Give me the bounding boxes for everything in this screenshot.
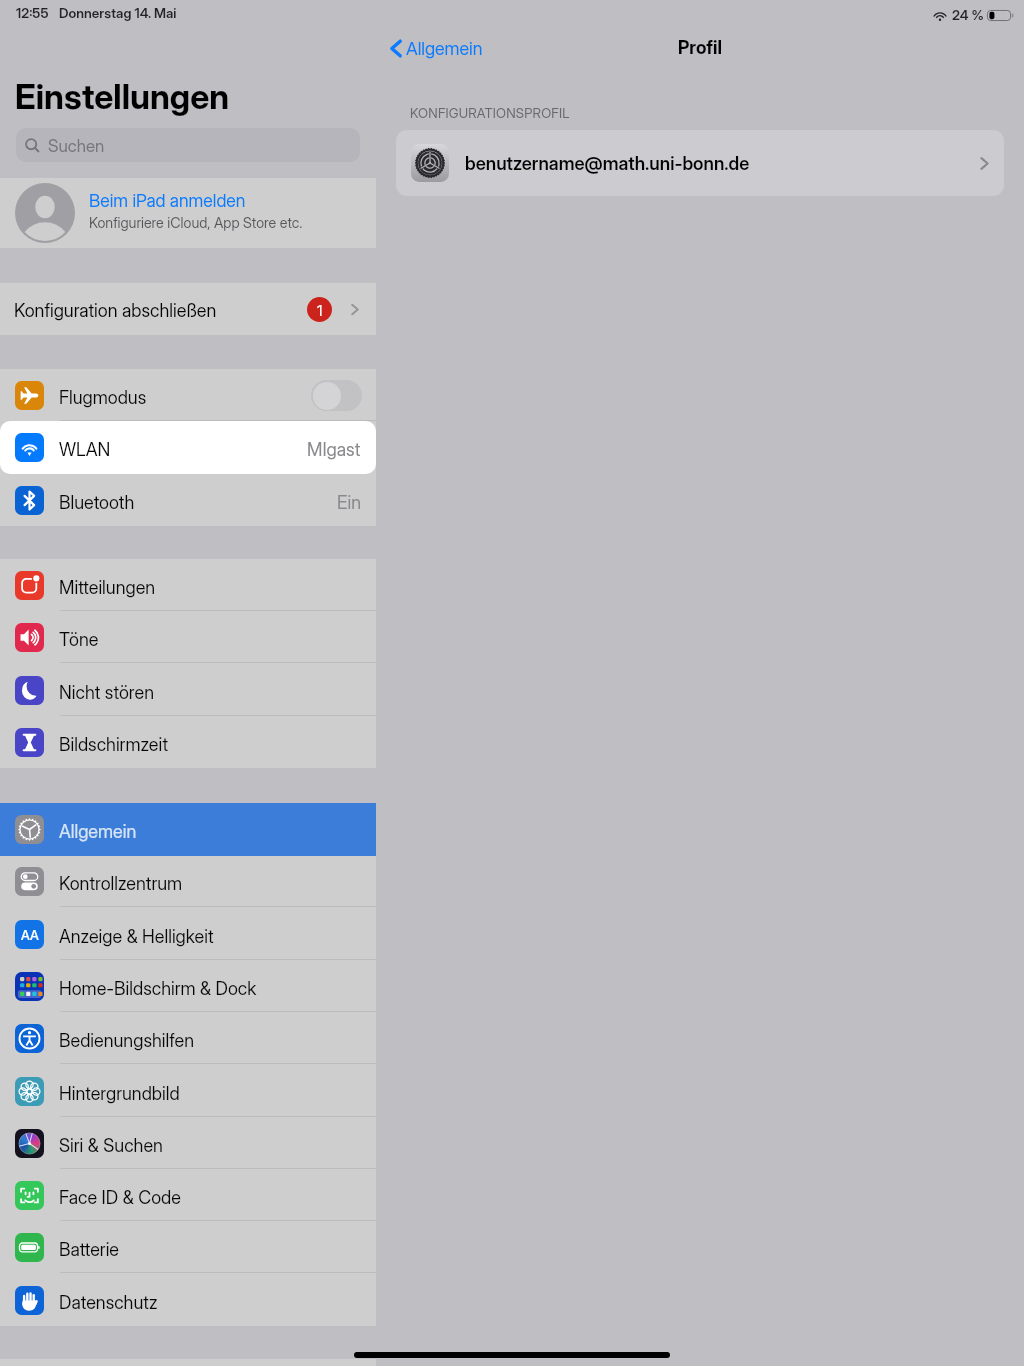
staticText: Allgemein <box>59 821 137 843</box>
button[interactable]: Allgemein <box>389 37 483 60</box>
staticText: Bedienungshilfen <box>59 1030 195 1052</box>
staticText: Face ID & Code <box>59 1187 181 1209</box>
staticText: Ein <box>337 492 361 514</box>
staticText: Konfiguriere iCloud, App Store etc. <box>89 214 303 231</box>
button[interactable]: Bluetooth <box>0 474 376 527</box>
staticText: Einstellungen <box>15 76 230 117</box>
staticText: Nicht stören <box>59 682 154 704</box>
staticText: 24 % <box>952 7 984 23</box>
button[interactable]: Home-Bildschirm & Dock <box>0 960 376 1013</box>
button[interactable]: Konfiguration abschließen <box>0 283 376 335</box>
staticText: Bildschirmzeit <box>59 734 168 756</box>
button[interactable]: Flugmodus ein- oder ausschalten <box>311 380 362 411</box>
staticText: Kontrollzentrum <box>59 873 183 895</box>
button[interactable]: Siri & Suchen <box>0 1117 376 1170</box>
button[interactable]: Töne <box>0 611 376 664</box>
staticText: Siri & Suchen <box>59 1135 163 1157</box>
staticText: Flugmodus <box>59 387 147 409</box>
staticText: Konfiguration abschließen <box>14 300 217 322</box>
staticText: Home-Bildschirm & Dock <box>59 978 257 1000</box>
button[interactable]: AA <box>0 908 376 961</box>
staticText: 12:55 <box>16 5 49 21</box>
staticText: Mitteilungen <box>59 577 156 599</box>
staticText: Bluetooth <box>59 492 135 514</box>
button[interactable]: Flugmodus <box>0 369 376 422</box>
staticText: AA <box>21 927 39 943</box>
staticText: Hintergrundbild <box>59 1083 180 1105</box>
button[interactable]: Mitteilungen <box>0 559 376 612</box>
staticText: Donnerstag 14. Mai <box>59 5 177 21</box>
button[interactable]: Face ID & Code <box>0 1169 376 1222</box>
button[interactable]: Nicht stören <box>0 664 376 717</box>
staticText: Anzeige & Helligkeit <box>59 926 214 948</box>
button[interactable]: benutzername@math.uni-bonn.de <box>396 130 1004 196</box>
staticText: WLAN <box>59 439 111 461</box>
button[interactable]: Kontrollzentrum <box>0 855 376 908</box>
staticText: 1 <box>317 301 323 319</box>
staticText: Batterie <box>59 1239 120 1261</box>
staticText: Allgemein <box>406 38 483 60</box>
button[interactable]: Hintergrundbild <box>0 1065 376 1118</box>
staticText: benutzername@math.uni-bonn.de <box>465 152 750 174</box>
staticText: Suchen <box>48 136 105 157</box>
staticText: Töne <box>59 629 99 651</box>
button[interactable]: Bildschirmzeit <box>0 716 376 769</box>
button[interactable]: Batterie <box>0 1221 376 1274</box>
button[interactable]: Suchen <box>16 128 360 162</box>
staticText: Profil <box>678 37 722 59</box>
button[interactable]: Bedienungshilfen <box>0 1012 376 1065</box>
button[interactable]: Beim iPad anmelden <box>0 178 376 248</box>
staticText: Datenschutz <box>59 1292 158 1314</box>
button[interactable]: Allgemein <box>0 803 376 856</box>
staticText: Beim iPad anmelden <box>89 190 246 211</box>
staticText: KONFIGURATIONSPROFIL <box>410 105 570 121</box>
button[interactable]: WLAN <box>0 421 376 474</box>
staticText: MIgast <box>307 439 361 461</box>
button[interactable]: Datenschutz <box>0 1274 376 1327</box>
